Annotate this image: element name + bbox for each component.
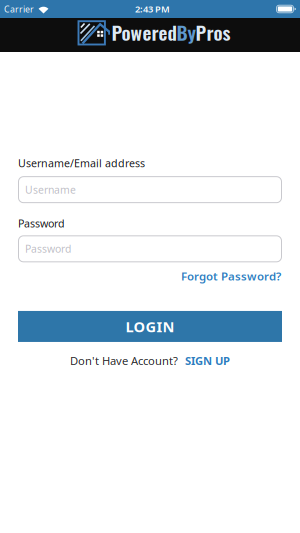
- button[interactable]: SIGN UP: [185, 353, 230, 368]
- staticText: Forgot Password?: [181, 268, 281, 284]
- staticText: Pros: [195, 18, 230, 46]
- button[interactable]: Forgot Password?: [181, 268, 281, 284]
- button[interactable]: LOGIN: [18, 311, 282, 342]
- button[interactable]: Password: [18, 235, 282, 262]
- button[interactable]: Username: [18, 176, 282, 203]
- staticText: SIGN UP: [185, 353, 230, 368]
- staticText: By: [176, 18, 195, 46]
- staticText: Password: [25, 242, 71, 256]
- staticText: Username/Email address: [18, 156, 145, 170]
- staticText: 2:43 PM: [135, 3, 170, 15]
- staticText: Username: [25, 183, 76, 197]
- staticText: Don't Have Account?: [70, 353, 178, 368]
- staticText: Carrier: [4, 3, 34, 15]
- staticText: Powered: [111, 18, 176, 46]
- staticText: Password: [18, 216, 65, 230]
- staticText: LOGIN: [125, 317, 174, 336]
